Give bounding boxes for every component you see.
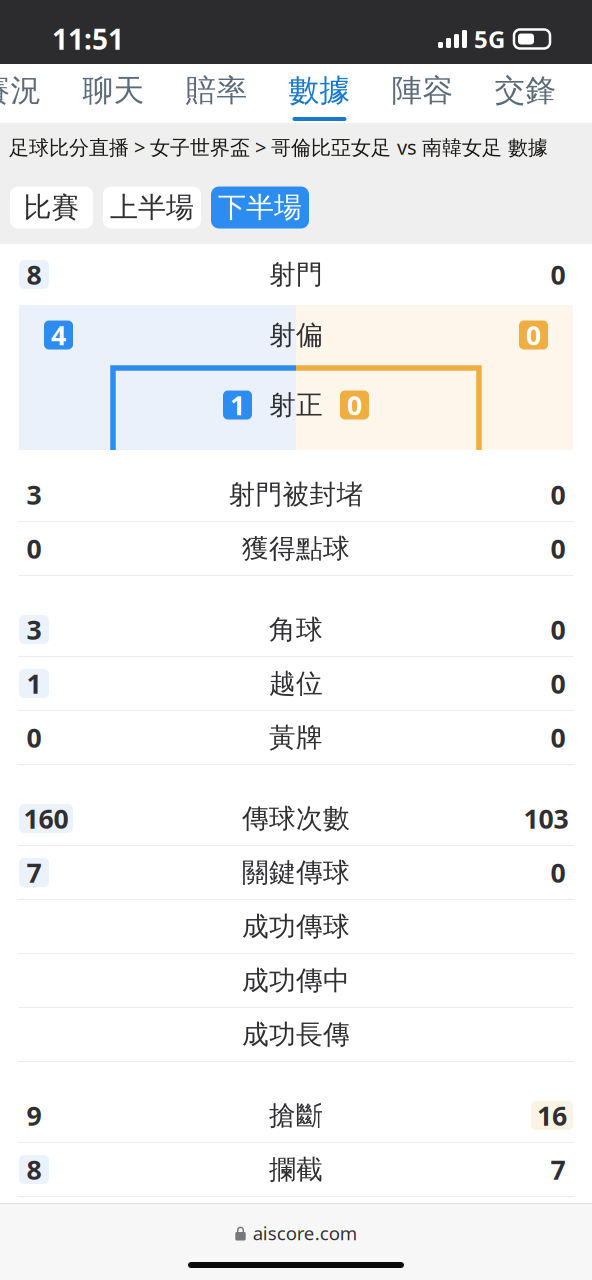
staticText: 傳球次數 [242, 802, 350, 835]
button[interactable]: 足球比分直播 > 女子世界盃 > 哥倫比亞女足 vs 南韓女足 數據 [9, 134, 569, 160]
staticText: 成功長傳 [242, 1018, 350, 1051]
staticText: 上半場 [110, 190, 194, 225]
staticText: 下半場 [218, 190, 302, 225]
staticText: 0 [347, 387, 362, 423]
staticText: 0 [550, 665, 565, 702]
staticText: 數據 [288, 71, 350, 110]
staticText: 角球 [269, 613, 323, 646]
staticText: 7 [550, 1151, 565, 1188]
staticText: 黃牌 [269, 721, 323, 754]
staticText: 1 [230, 387, 245, 423]
staticText: 足球比分直播 > 女子世界盃 > 哥倫比亞女足 vs 南韓女足 數據 [9, 134, 548, 160]
staticText: 0 [550, 476, 565, 513]
staticText: 5G [474, 23, 505, 55]
staticText: 攔截 [269, 1153, 323, 1186]
button[interactable]: 賠率 [165, 64, 268, 123]
button[interactable]: 聊天 [62, 64, 165, 123]
staticText: 搶斷 [269, 1099, 323, 1132]
staticText: 11:51 [52, 20, 124, 58]
staticText: 8 [26, 256, 41, 293]
button[interactable]: 交鋒 [474, 64, 577, 123]
button[interactable]: 數據 [268, 64, 371, 123]
staticText: 射門 [269, 258, 323, 291]
staticText: 陣容 [391, 71, 453, 110]
staticText: 103 [523, 800, 568, 837]
staticText: 4 [51, 317, 66, 353]
button[interactable]: aiscore.com [0, 1204, 592, 1262]
staticText: 關鍵傳球 [242, 856, 350, 889]
staticText: 0 [550, 719, 565, 756]
staticText: 0 [526, 317, 541, 353]
button[interactable]: 上半場 [103, 186, 201, 228]
staticText: 0 [550, 611, 565, 648]
staticText: 聊天 [82, 71, 144, 110]
staticText: 7 [26, 854, 41, 891]
staticText: 8 [26, 1151, 41, 1188]
staticText: 賠率 [185, 71, 247, 110]
staticText: 9 [26, 1097, 41, 1134]
button[interactable]: 賽況 [0, 64, 62, 123]
staticText: 3 [26, 476, 41, 513]
staticText: 0 [26, 530, 41, 567]
staticText: 成功傳中 [242, 964, 350, 997]
staticText: 1 [26, 665, 41, 702]
staticText: 0 [26, 719, 41, 756]
staticText: 賽況 [0, 71, 41, 110]
staticText: 0 [550, 854, 565, 891]
button[interactable]: 比賽 [10, 186, 93, 228]
staticText: 0 [550, 530, 565, 567]
staticText: 射偏 [269, 318, 323, 352]
staticText: 16 [537, 1097, 567, 1134]
staticText: 交鋒 [494, 71, 556, 110]
staticText: 160 [23, 800, 68, 837]
staticText: 0 [550, 256, 565, 293]
staticText: aiscore.com [253, 1220, 357, 1246]
staticText: 射正 [269, 388, 323, 422]
staticText: 3 [26, 611, 41, 648]
staticText: 射門被封堵 [228, 478, 363, 511]
staticText: 獲得點球 [242, 532, 350, 565]
staticText: 成功傳球 [242, 910, 350, 943]
button[interactable]: 下半場 [211, 186, 309, 228]
staticText: 越位 [269, 667, 323, 700]
button[interactable]: 陣容 [371, 64, 474, 123]
staticText: 比賽 [23, 190, 79, 225]
